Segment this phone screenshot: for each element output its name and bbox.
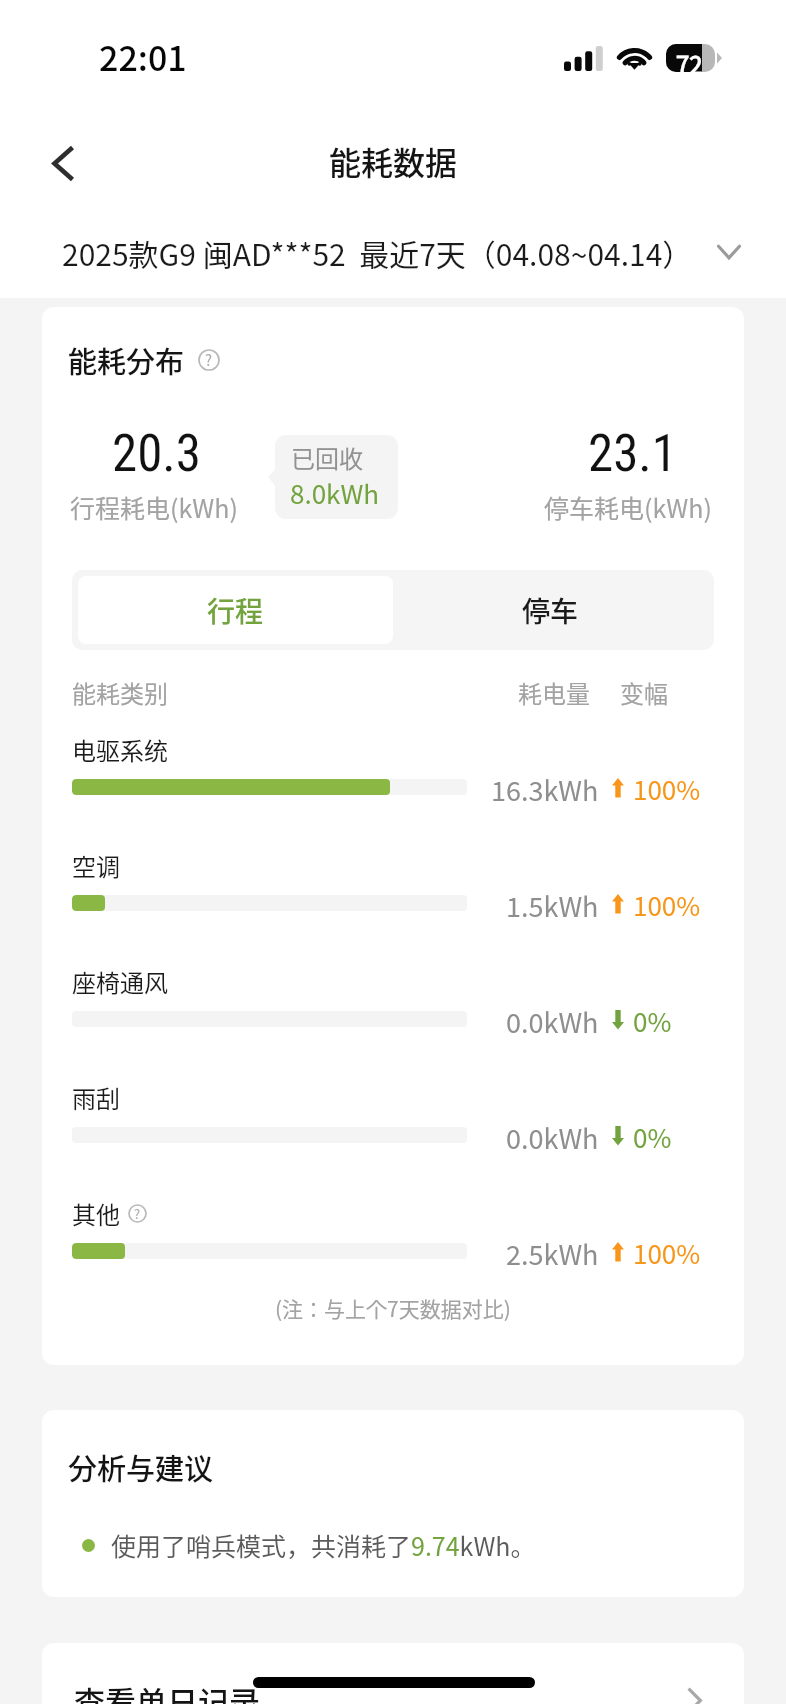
staticText: 16.3kWh bbox=[491, 770, 599, 804]
staticText: 23.1 bbox=[588, 424, 677, 484]
staticText: 行程耗电(kWh) bbox=[70, 489, 238, 525]
staticText: 能耗类别 bbox=[72, 675, 168, 710]
staticText: 停车 bbox=[522, 590, 579, 631]
staticText: 已回收 bbox=[291, 440, 363, 475]
staticText: 0% bbox=[633, 1118, 672, 1152]
staticText: 停车耗电(kWh) bbox=[544, 489, 712, 525]
staticText: 分析与建议 bbox=[68, 1446, 214, 1488]
button[interactable]: 查看单日记录 bbox=[74, 1643, 702, 1704]
staticText: 空调 bbox=[72, 848, 120, 883]
button[interactable]: 停车 bbox=[393, 576, 708, 644]
staticText: 电驱系统 bbox=[72, 732, 168, 767]
staticText: 22:01 bbox=[99, 32, 187, 81]
staticText: 雨刮 bbox=[72, 1080, 120, 1115]
button[interactable]: Back bbox=[35, 135, 91, 191]
staticText: 100% bbox=[633, 1234, 701, 1268]
staticText: 变幅 bbox=[620, 675, 668, 710]
staticText: 查看单日记录 bbox=[74, 1678, 260, 1704]
staticText: 能耗数据 bbox=[329, 138, 458, 184]
staticText: 座椅通风 bbox=[72, 964, 168, 999]
staticText: 行程 bbox=[207, 590, 264, 631]
staticText: 0.0kWh bbox=[506, 1118, 599, 1152]
staticText: 2025款G9 闽AD***52 最近7天（04.08~04.14） bbox=[62, 231, 693, 274]
button[interactable]: 行程 bbox=[78, 576, 393, 644]
staticText: 耗电量 bbox=[518, 675, 590, 710]
staticText: 8.0kWh bbox=[290, 474, 380, 512]
staticText: ? bbox=[134, 1204, 141, 1223]
staticText: 100% bbox=[633, 770, 701, 804]
staticText: 72 bbox=[676, 46, 703, 74]
staticText: 其他 bbox=[72, 1196, 120, 1231]
staticText: 2.5kWh bbox=[506, 1234, 599, 1268]
button[interactable]: 2025款G9 闽AD***52 最近7天（04.08~04.14） bbox=[0, 226, 786, 278]
staticText: 能耗分布 bbox=[68, 339, 185, 381]
staticText: 20.3 bbox=[112, 424, 201, 484]
staticText: 使用了哨兵模式，共消耗了9.74kWh。 bbox=[111, 1527, 536, 1563]
staticText: ? bbox=[205, 349, 213, 371]
staticText: 100% bbox=[633, 886, 701, 920]
staticText: 0% bbox=[633, 1002, 672, 1036]
staticText: (注：与上个7天数据对比) bbox=[275, 1293, 511, 1323]
staticText: 1.5kWh bbox=[506, 886, 599, 920]
staticText: 0.0kWh bbox=[506, 1002, 599, 1036]
